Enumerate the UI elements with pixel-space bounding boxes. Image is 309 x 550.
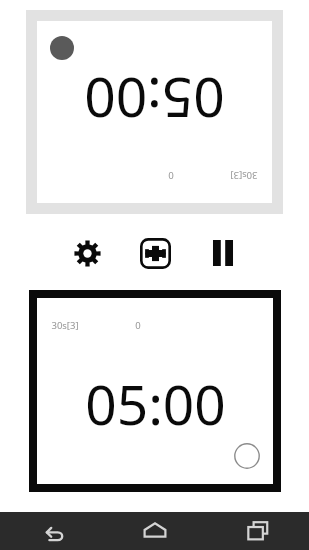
staticText: 0 [168,169,174,182]
button[interactable]: Status [234,443,260,469]
staticText: 30s[3] [51,319,79,332]
button[interactable]: Back [0,512,103,550]
staticText: 05:00 [84,62,225,137]
button[interactable]: Settings [65,231,109,275]
button[interactable]: Status [50,36,74,60]
button[interactable]: 30s[3] [37,21,272,203]
button[interactable]: 30s[3] [37,298,273,484]
button[interactable]: Mirror display [133,231,177,275]
staticText: 0 [135,319,141,332]
button[interactable]: Pause [201,231,245,275]
button[interactable]: Recent apps [206,512,309,550]
staticText: 05:00 [85,366,226,441]
staticText: 30s[3] [230,169,258,182]
button[interactable]: Home [103,512,206,550]
